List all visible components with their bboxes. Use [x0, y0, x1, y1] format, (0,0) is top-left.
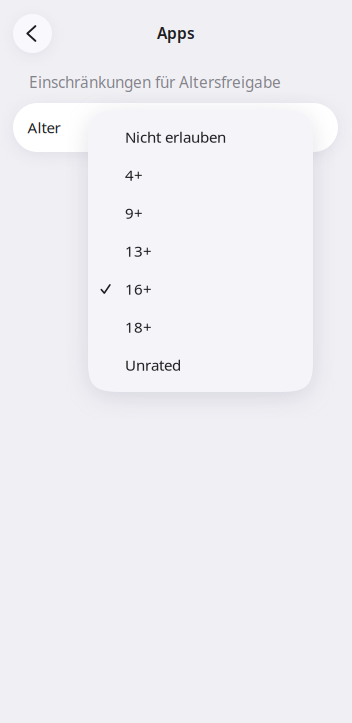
button[interactable]: 13+ [88, 232, 313, 270]
staticText: 16+ [125, 279, 152, 299]
button[interactable]: 18+ [88, 308, 313, 346]
staticText: 13+ [125, 241, 152, 261]
staticText: 9+ [125, 203, 143, 223]
staticText: Einschränkungen für Altersfreigabe [29, 72, 281, 92]
staticText: Apps [157, 22, 195, 44]
staticText: Alter [27, 117, 60, 138]
button[interactable]: 9+ [88, 194, 313, 232]
button[interactable]: Nicht erlauben [88, 118, 313, 156]
staticText: 18+ [125, 317, 152, 337]
button[interactable]: Unrated [88, 346, 313, 384]
button[interactable]: Alter [13, 103, 338, 152]
button[interactable]: Back [13, 14, 52, 53]
staticText: Nicht erlauben [125, 127, 226, 147]
button[interactable]: 4+ [88, 156, 313, 194]
staticText: Unrated [125, 355, 181, 375]
button[interactable]: 16+ [88, 270, 313, 308]
staticText: 4+ [125, 165, 143, 185]
